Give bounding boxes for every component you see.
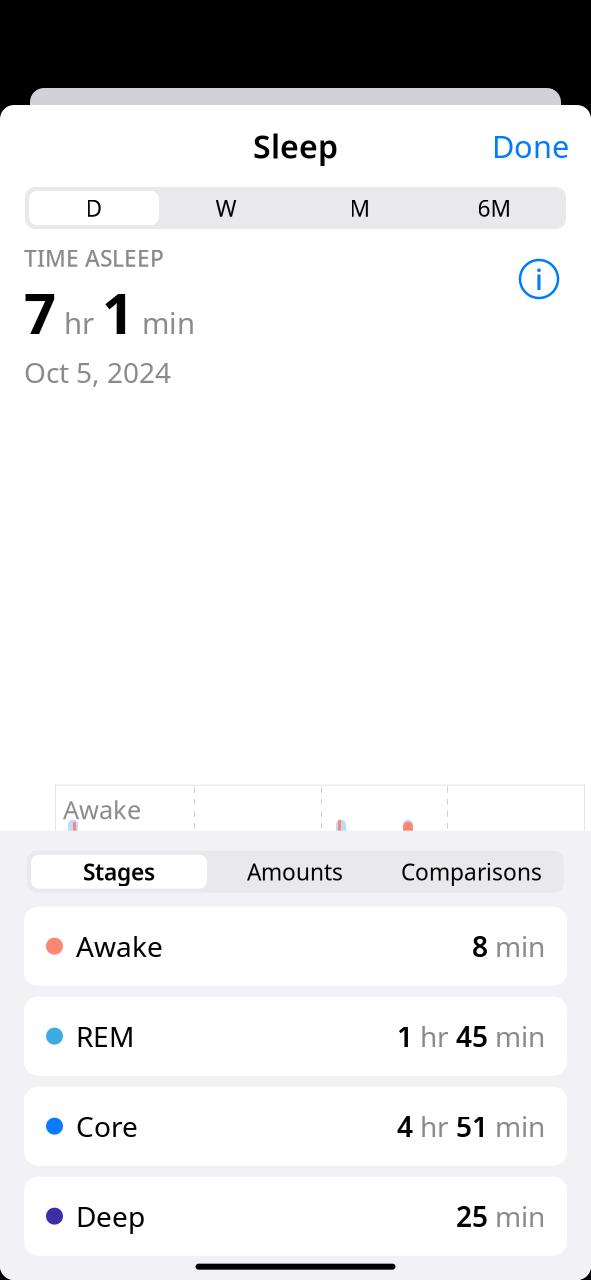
staticText: Core: [63, 992, 118, 1025]
button[interactable]: Core: [24, 1087, 567, 1166]
staticText: 45: [456, 1018, 488, 1055]
button[interactable]: 6M: [427, 191, 562, 225]
staticText: Done: [492, 126, 569, 166]
staticText: hr: [413, 1108, 456, 1145]
staticText: 25: [456, 1198, 488, 1235]
button[interactable]: M: [293, 191, 427, 225]
staticText: Deep: [63, 1091, 125, 1125]
staticText: 51: [456, 1108, 488, 1145]
staticText: 6M: [477, 193, 511, 223]
staticText: M: [349, 193, 370, 223]
staticText: min: [134, 303, 195, 342]
staticText: Stages: [83, 857, 155, 887]
button[interactable]: Done: [470, 116, 591, 176]
staticText: Amounts: [247, 857, 343, 887]
staticText: min: [488, 928, 545, 965]
button[interactable]: D: [29, 191, 159, 225]
staticText: Sleep: [253, 125, 338, 167]
staticText: Awake: [69, 928, 163, 965]
staticText: hr: [56, 303, 102, 342]
staticText: 1: [397, 1018, 413, 1055]
staticText: REM: [63, 892, 116, 926]
staticText: 4 AM: [438, 1186, 498, 1219]
button[interactable]: Stages: [31, 855, 207, 889]
button[interactable]: Deep: [24, 1177, 567, 1256]
staticText: 4: [397, 1108, 413, 1145]
staticText: D: [85, 193, 102, 223]
staticText: hr: [413, 1018, 456, 1055]
staticText: min: [488, 1198, 545, 1235]
button[interactable]: Comparisons: [383, 855, 560, 889]
staticText: Comparisons: [401, 857, 542, 887]
staticText: Awake: [63, 793, 141, 826]
staticText: i: [535, 259, 543, 298]
staticText: Oct 5, 2024: [24, 353, 171, 391]
staticText: Core: [69, 1108, 138, 1145]
staticText: 1: [102, 275, 134, 349]
button[interactable]: W: [159, 191, 293, 225]
button[interactable]: Awake: [24, 907, 567, 986]
staticText: 10 PM: [57, 1186, 130, 1219]
staticText: 8: [472, 928, 488, 965]
staticText: min: [488, 1108, 545, 1145]
button[interactable]: Amounts: [207, 855, 383, 889]
staticText: REM: [69, 1018, 134, 1055]
staticText: W: [215, 193, 236, 223]
staticText: min: [488, 1018, 545, 1055]
staticText: 7: [24, 275, 56, 349]
staticText: Deep: [69, 1198, 145, 1235]
button[interactable]: REM: [24, 997, 567, 1076]
button[interactable]: About time asleep: [511, 251, 567, 307]
staticText: TIME ASLEEP: [24, 243, 164, 273]
